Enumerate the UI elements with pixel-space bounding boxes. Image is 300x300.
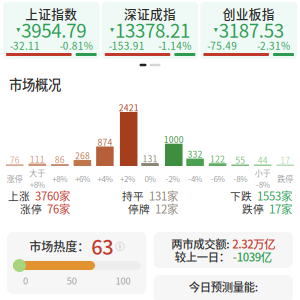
staticText: -2.31% xyxy=(257,38,290,53)
staticText: +8% xyxy=(30,179,45,190)
staticText: 0% xyxy=(144,173,155,184)
staticText: 下跌 xyxy=(230,188,252,203)
staticText: 停牌 xyxy=(128,201,150,216)
staticText: +2% xyxy=(120,173,135,184)
staticText: -153.91 xyxy=(109,38,145,53)
staticText: 76家 xyxy=(47,200,70,217)
staticText: 13378.21 xyxy=(115,16,190,43)
staticText: ▾ xyxy=(110,25,114,34)
staticText: 今日预测量能: xyxy=(189,278,258,295)
staticText: 跌停 xyxy=(242,201,264,216)
staticText: +8% xyxy=(52,173,67,184)
staticText: +6% xyxy=(75,173,90,184)
staticText: -1.14% xyxy=(158,38,191,53)
staticText: 涨停 xyxy=(20,201,42,216)
staticText: 涨停 xyxy=(7,173,23,184)
staticText: 111 xyxy=(30,153,45,165)
staticText: 2421 xyxy=(119,101,139,114)
staticText: ▾ xyxy=(16,25,20,34)
staticText: -6% xyxy=(211,173,225,184)
staticText: 86 xyxy=(55,153,65,166)
staticText: 两市成交额: xyxy=(171,235,229,252)
staticText: 3954.79 xyxy=(21,16,86,43)
staticText: 上证指数 xyxy=(25,4,77,23)
staticText: 131 xyxy=(142,152,157,165)
staticText: 332 xyxy=(188,148,203,160)
staticText: 市场概况 xyxy=(9,74,61,94)
staticText: 63 xyxy=(91,231,113,260)
button[interactable]: 上证指数 xyxy=(3,2,100,59)
staticText: 较上一日： xyxy=(175,248,230,265)
staticText: 122 xyxy=(210,152,225,165)
staticText: 874 xyxy=(97,136,112,148)
staticText: -75.49 xyxy=(207,38,237,53)
staticText: 大于 xyxy=(29,167,45,179)
staticText: 100 xyxy=(115,274,130,287)
staticText: +4% xyxy=(97,173,112,184)
staticText: ⓘ xyxy=(115,239,124,253)
staticText: 50 xyxy=(67,274,77,287)
staticText: 76 xyxy=(10,153,20,166)
staticText: 3760家 xyxy=(35,187,70,204)
staticText: -2% xyxy=(165,173,179,184)
staticText: 131家 xyxy=(149,187,178,204)
staticText: 1553家 xyxy=(257,187,292,204)
staticText: -0.81% xyxy=(60,38,93,53)
staticText: 创业板指 xyxy=(223,4,275,23)
staticText: 2.32万亿 xyxy=(232,235,275,252)
staticText: -4% xyxy=(188,173,202,184)
staticText: ▾ xyxy=(214,25,218,34)
staticText: -32.11 xyxy=(10,38,40,53)
staticText: 17 xyxy=(280,154,290,166)
staticText: -8% xyxy=(256,179,270,190)
staticText: -1039亿 xyxy=(233,248,272,265)
staticText: 跌停 xyxy=(277,173,293,184)
staticText: 市场热度： xyxy=(29,237,89,255)
staticText: 1000 xyxy=(164,133,184,145)
staticText: 小于 xyxy=(255,167,271,179)
staticText: 深证成指 xyxy=(124,4,176,23)
button[interactable]: 深证成指 xyxy=(102,2,198,59)
staticText: 17家 xyxy=(269,200,292,217)
staticText: 3187.53 xyxy=(219,16,284,43)
staticText: 上涨 xyxy=(8,188,30,203)
staticText: -8% xyxy=(233,173,247,184)
staticText: 55 xyxy=(235,154,245,166)
button[interactable]: 创业板指 xyxy=(200,2,297,59)
staticText: 0 xyxy=(23,274,28,287)
staticText: 持平 xyxy=(122,188,144,203)
staticText: 44 xyxy=(258,154,268,166)
staticText: 268 xyxy=(75,149,90,162)
staticText: 12家 xyxy=(155,200,178,217)
